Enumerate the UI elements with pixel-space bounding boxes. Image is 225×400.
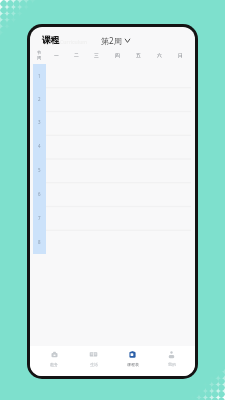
- button[interactable]: 教务: [34, 346, 74, 376]
- staticText: 我的: [168, 362, 176, 367]
- button[interactable]: 五: [128, 46, 149, 64]
- button[interactable]: 日: [170, 46, 191, 64]
- button[interactable]: 课程: [42, 35, 60, 46]
- staticText: 6: [38, 191, 41, 197]
- button[interactable]: 第2周: [101, 35, 130, 46]
- staticText: 一: [54, 52, 59, 58]
- staticText: 教务: [50, 362, 58, 367]
- staticText: 8: [38, 239, 41, 245]
- staticText: 六: [157, 52, 162, 58]
- staticText: 日: [178, 52, 183, 58]
- staticText: 课程表: [127, 362, 139, 367]
- staticText: 三: [94, 52, 99, 58]
- button[interactable]: 四: [107, 46, 128, 64]
- staticText: 3: [38, 119, 41, 125]
- staticText: 节: [37, 50, 42, 55]
- staticText: 第2周: [101, 35, 122, 46]
- button[interactable]: 我的: [152, 346, 191, 376]
- staticText: 7: [38, 215, 41, 221]
- staticText: 四: [115, 52, 120, 58]
- staticText: 2: [38, 96, 41, 102]
- staticText: 1: [38, 73, 41, 79]
- staticText: 5: [38, 167, 41, 173]
- button[interactable]: 三: [86, 46, 107, 64]
- staticText: 周: [37, 55, 42, 60]
- staticText: 课程: [42, 35, 60, 46]
- button[interactable]: 一: [46, 46, 66, 64]
- staticText: 生活: [90, 362, 98, 367]
- button[interactable]: 六: [149, 46, 170, 64]
- staticText: 4: [38, 143, 41, 149]
- staticText: 二: [74, 52, 79, 58]
- button[interactable]: 生活: [74, 346, 113, 376]
- button[interactable]: 课程表: [113, 346, 152, 376]
- button[interactable]: 二: [66, 46, 86, 64]
- staticText: 五: [136, 52, 141, 58]
